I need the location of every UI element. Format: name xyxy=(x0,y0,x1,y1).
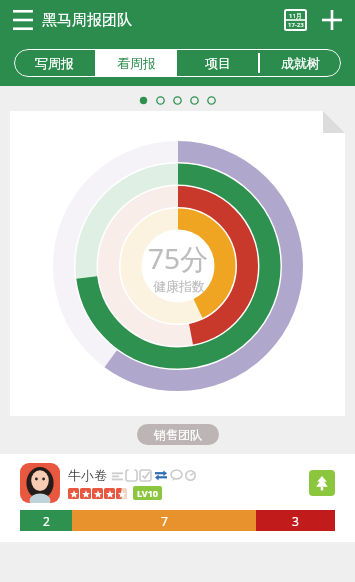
button[interactable]: 看周报 xyxy=(95,49,177,77)
button[interactable]: 2 xyxy=(20,510,72,531)
staticText: 75分 xyxy=(148,239,209,277)
staticText: 3 xyxy=(292,513,299,529)
staticText: 写周报 xyxy=(35,55,74,71)
staticText: 项目 xyxy=(205,55,231,71)
staticText: 销售团队 xyxy=(154,427,202,442)
staticText: 看周报 xyxy=(117,55,156,71)
staticText: 成就树 xyxy=(281,55,320,71)
staticText: 黑马周报团队 xyxy=(42,11,132,30)
button[interactable]: 7 xyxy=(72,510,256,531)
button[interactable]: Select week xyxy=(282,7,308,33)
button[interactable]: 写周报 xyxy=(14,49,95,77)
staticText: 健康指数 xyxy=(153,278,205,294)
staticText: 牛小卷 xyxy=(68,467,107,483)
button[interactable]: 牛小卷 xyxy=(0,454,355,542)
button[interactable]: 销售团队 xyxy=(137,424,219,445)
staticText: 17-23 xyxy=(288,21,304,29)
button[interactable]: 项目 xyxy=(177,49,259,77)
button[interactable]: Add xyxy=(315,3,349,37)
staticText: 2 xyxy=(43,513,50,529)
button[interactable]: 成就树 xyxy=(259,49,341,77)
button[interactable]: 3 xyxy=(256,510,335,531)
staticText: LV10 xyxy=(137,487,158,499)
staticText: 7 xyxy=(161,513,168,529)
button[interactable]: Menu xyxy=(8,5,38,35)
button[interactable]: Achievement tree xyxy=(309,470,335,496)
staticText: 11月 xyxy=(289,12,302,20)
